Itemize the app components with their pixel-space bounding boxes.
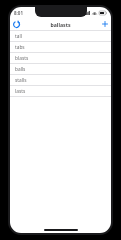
staticText: balls (15, 66, 26, 73)
button[interactable]: tall (10, 31, 111, 42)
button[interactable]: stalls (10, 75, 111, 86)
staticText: tabs (15, 44, 25, 51)
button[interactable]: blasts (10, 53, 111, 64)
staticText: 8:01 (14, 10, 23, 16)
button[interactable]: Add (99, 18, 111, 30)
staticText: ballasts (50, 21, 71, 28)
staticText: tall (15, 33, 22, 40)
staticText: lasts (15, 88, 26, 95)
staticText: stalls (15, 77, 27, 84)
staticText: blasts (15, 55, 29, 62)
button[interactable]: Refresh (10, 18, 22, 30)
button[interactable]: lasts (10, 86, 111, 97)
button[interactable]: balls (10, 64, 111, 75)
button[interactable]: tabs (10, 42, 111, 53)
